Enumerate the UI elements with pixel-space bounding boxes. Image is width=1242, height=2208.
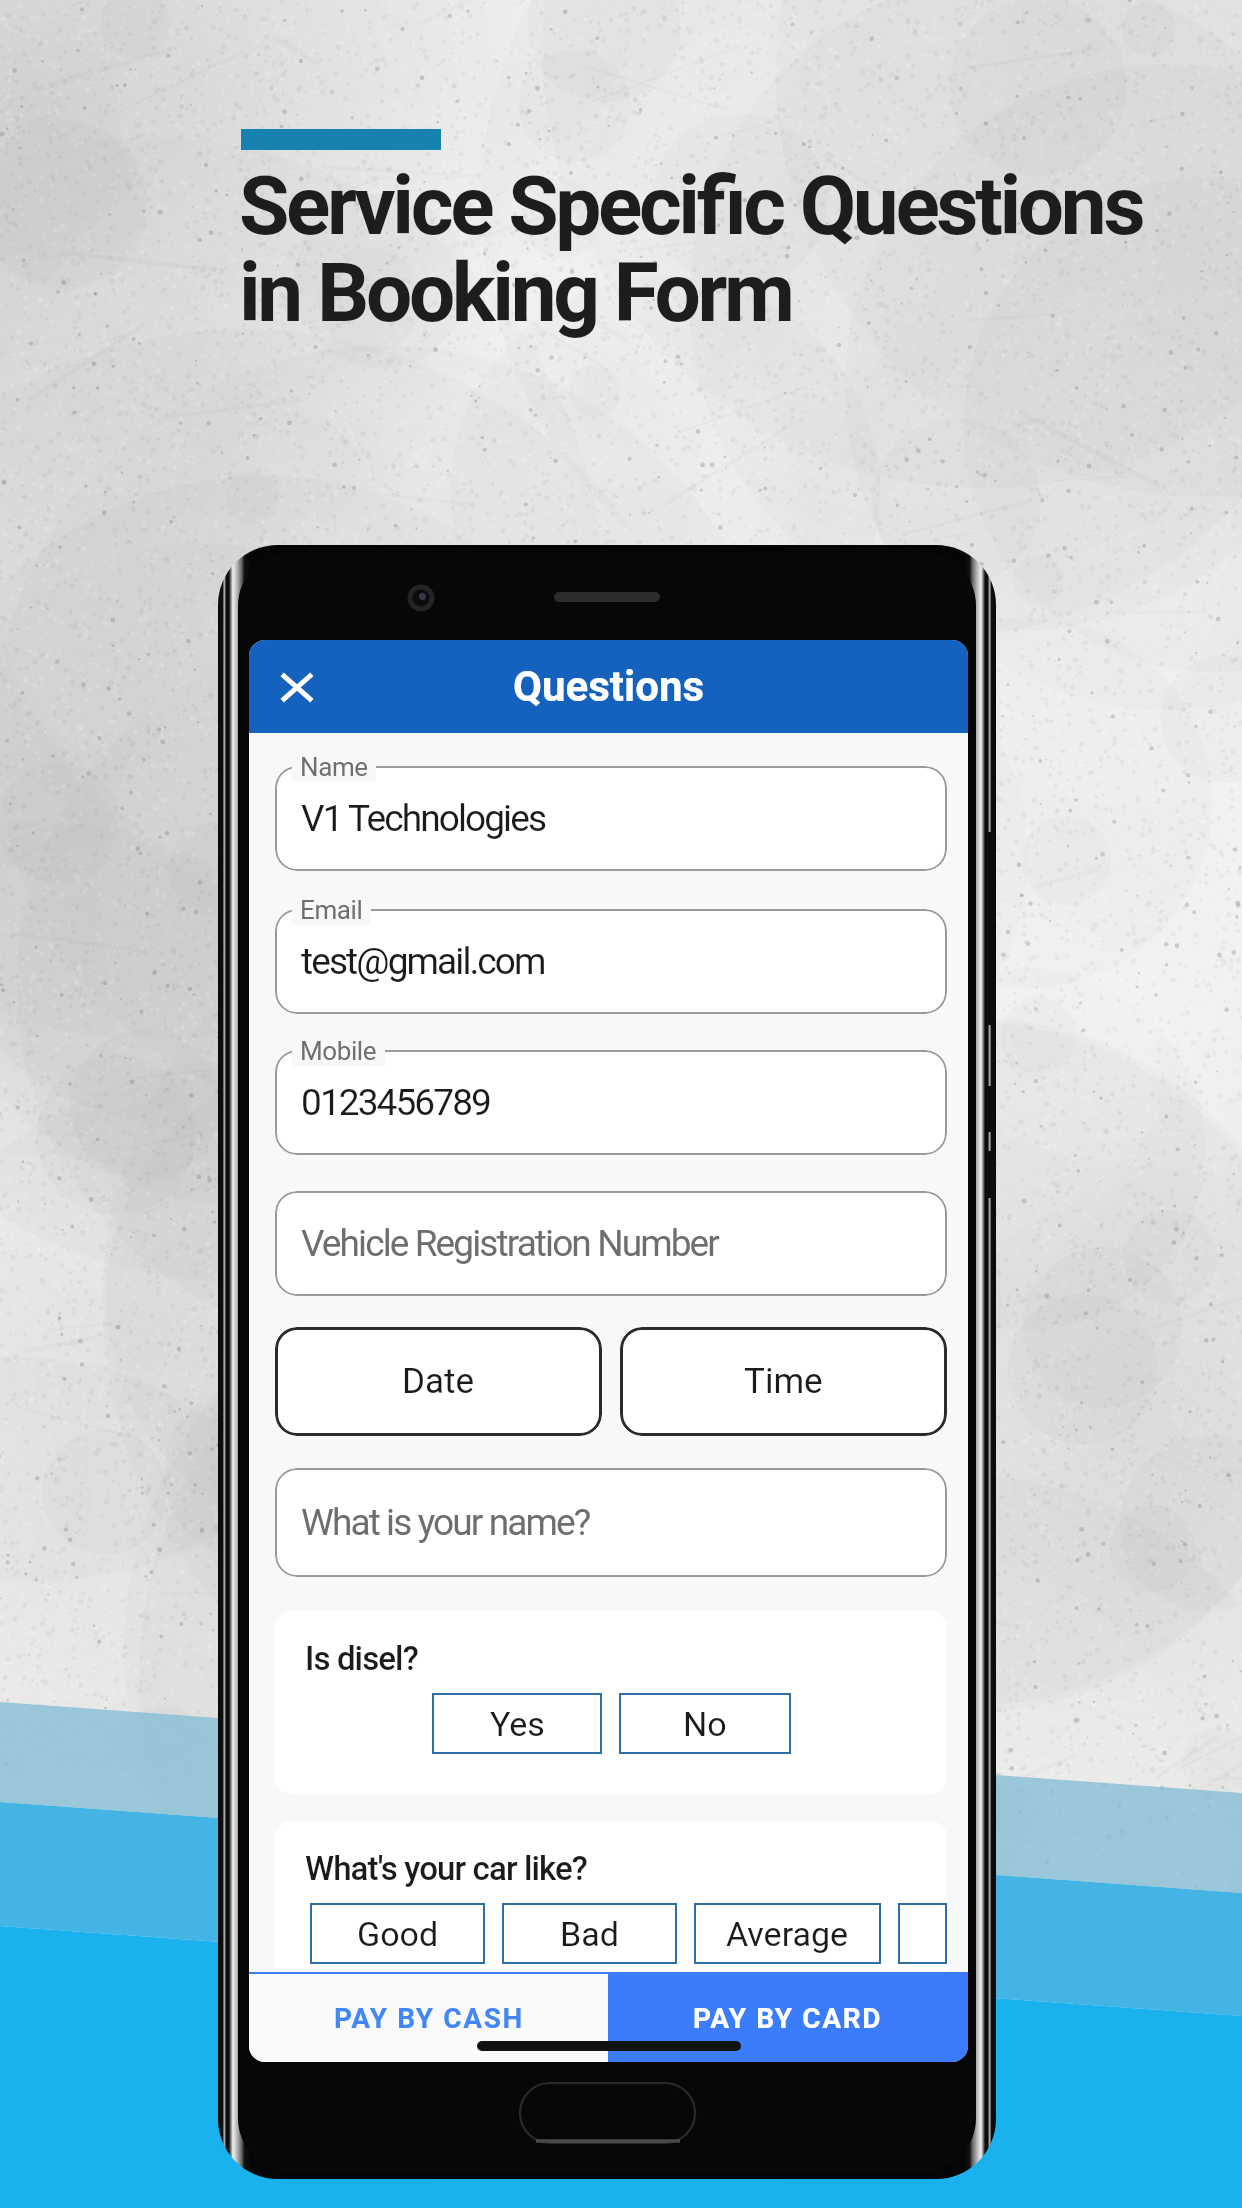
staticText: Good [357, 1914, 439, 1954]
staticText: Email [300, 895, 363, 925]
button[interactable]: Vehicle Registration Number [275, 1191, 947, 1296]
button[interactable]: Average [694, 1903, 881, 1964]
button[interactable]: Bad [502, 1903, 677, 1964]
staticText: test@gmail.com [301, 940, 545, 983]
staticText: Time [744, 1361, 823, 1402]
button[interactable]: 0123456789 [275, 1050, 947, 1155]
button[interactable]: More options [898, 1903, 947, 1964]
staticText: Service Specific Questions in Booking Fo… [239, 158, 1143, 341]
staticText: Mobile [300, 1036, 377, 1066]
button[interactable]: Good [310, 1903, 485, 1964]
staticText: Bad [560, 1914, 619, 1954]
staticText: What is your name? [301, 1501, 590, 1544]
button[interactable]: V1 Technologies [275, 766, 947, 871]
button[interactable]: PAY BY CARD [608, 1974, 968, 2062]
staticText: Name [300, 752, 368, 782]
staticText: Questions [513, 662, 705, 711]
staticText: Yes [490, 1704, 545, 1744]
staticText: What's your car like? [305, 1849, 587, 1888]
staticText: 0123456789 [301, 1081, 490, 1124]
button[interactable]: No [619, 1693, 791, 1754]
button[interactable]: Time [620, 1327, 947, 1436]
staticText: V1 Technologies [301, 797, 546, 840]
button[interactable]: PAY BY CASH [249, 1974, 608, 2062]
button[interactable]: Yes [432, 1693, 602, 1754]
staticText: PAY BY CASH [334, 2002, 524, 2035]
staticText: PAY BY CARD [693, 2002, 883, 2035]
staticText: No [683, 1704, 727, 1744]
staticText: Vehicle Registration Number [301, 1222, 718, 1265]
staticText: Date [402, 1361, 475, 1402]
button[interactable]: Close [269, 659, 325, 715]
button[interactable]: test@gmail.com [275, 909, 947, 1014]
staticText: Is disel? [305, 1639, 418, 1678]
staticText: Average [726, 1914, 849, 1954]
button[interactable]: Date [275, 1327, 602, 1436]
button[interactable]: What is your name? [275, 1468, 947, 1577]
